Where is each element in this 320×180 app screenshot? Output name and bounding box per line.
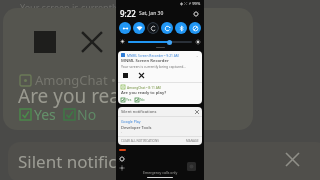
- staticText: MANAGE: [186, 139, 199, 143]
- staticText: Silent notifications: [121, 109, 157, 114]
- button[interactable]: Settings: [118, 155, 126, 163]
- button[interactable]: Quick setting toggle: [161, 22, 173, 34]
- staticText: AmongChat • 8:11: [35, 71, 146, 89]
- staticText: Your screen is currently being captured…: [20, 1, 193, 13]
- other: Dismiss all: [195, 110, 199, 114]
- staticText: No: [77, 105, 97, 124]
- staticText: AmongChat • 8:11 AM: [127, 85, 161, 89]
- button[interactable]: Quick setting toggle: [119, 22, 131, 34]
- button[interactable]: MNML Screen Recorder • 9:21 AM: [118, 51, 202, 82]
- button[interactable]: Quick setting toggle: [147, 22, 159, 34]
- staticText: Yes: [34, 105, 56, 124]
- staticText: MNML Screen Recorder • 9:21 AM: [127, 53, 179, 57]
- button[interactable]: Quick setting toggle: [175, 22, 187, 34]
- staticText: Are you ready to play?: [121, 90, 167, 96]
- staticText: No: [140, 97, 145, 102]
- staticText: MNML Screen Recorder: [121, 58, 169, 64]
- staticText: ⌄: [196, 54, 199, 57]
- button[interactable]: Quick setting toggle: [133, 22, 145, 34]
- staticText: Yes: [126, 97, 132, 102]
- button[interactable]: Stop recording: [121, 71, 130, 80]
- button[interactable]: Settings: [191, 9, 200, 18]
- button[interactable]: Brightness: [119, 38, 126, 45]
- button[interactable]: Quick setting toggle: [189, 22, 201, 34]
- staticText: Sat, Jan 30: [139, 10, 164, 17]
- staticText: 9:22: [120, 8, 136, 19]
- staticText: ·: [121, 130, 122, 135]
- staticText: CLEAR ALL NOTIFICATIONS: [121, 139, 159, 143]
- button[interactable]: CLEAR ALL NOTIFICATIONS: [121, 139, 159, 143]
- button[interactable]: No: [135, 97, 145, 102]
- button[interactable]: Yes: [121, 97, 132, 102]
- button[interactable]: Cancel recording: [137, 71, 146, 80]
- staticText: Your screen is currently being captured…: [121, 64, 186, 69]
- button[interactable]: MANAGE: [186, 139, 199, 143]
- button[interactable]: AmongChat • 8:11 AM: [118, 83, 202, 104]
- staticText: Google Play: [121, 119, 141, 124]
- button[interactable]: Auto brightness: [194, 38, 201, 45]
- staticText: Emergency calls only: [143, 170, 178, 175]
- staticText: ◈ ⁙ ⚡ 99%: [180, 1, 201, 6]
- staticText: Developer Tools: [121, 125, 152, 130]
- staticText: Are you ready to: [18, 83, 165, 109]
- button[interactable]: Edit tiles: [118, 164, 126, 172]
- button[interactable]: Silent notifications: [121, 109, 199, 114]
- staticText: Silent notifications: [18, 150, 166, 173]
